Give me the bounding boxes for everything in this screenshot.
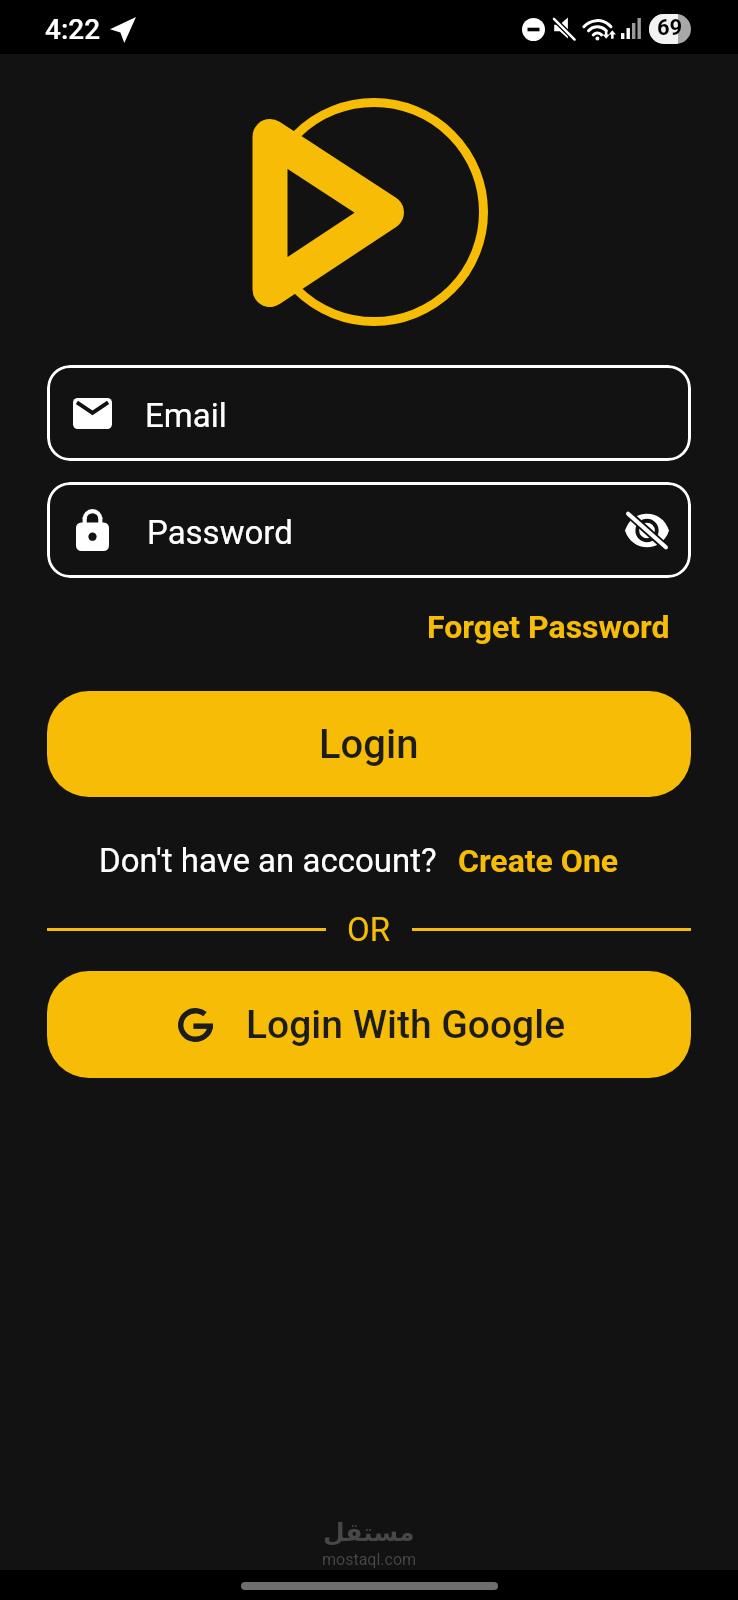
button[interactable]: Forget Password xyxy=(427,600,691,654)
button[interactable]: Login xyxy=(47,691,691,797)
staticText: 69 xyxy=(657,15,683,41)
staticText: Forget Password xyxy=(427,608,670,646)
staticText: Create One xyxy=(458,842,619,880)
staticText: OR xyxy=(347,910,391,949)
staticText: 4:22 xyxy=(45,13,101,46)
staticText: مستقل xyxy=(323,1518,415,1547)
staticText: mostaql.com xyxy=(322,1550,417,1569)
staticText: Email xyxy=(145,396,227,435)
button[interactable]: Create One xyxy=(458,842,619,880)
button[interactable]: Email xyxy=(47,365,691,461)
staticText: Don't have an account? xyxy=(99,841,437,880)
button[interactable]: Show password xyxy=(625,514,669,547)
staticText: Password xyxy=(147,513,293,552)
button[interactable]: Login With Google xyxy=(47,971,691,1078)
staticText: Login xyxy=(319,721,419,768)
button[interactable]: Password xyxy=(47,482,691,578)
staticText: Login With Google xyxy=(246,1002,566,1048)
